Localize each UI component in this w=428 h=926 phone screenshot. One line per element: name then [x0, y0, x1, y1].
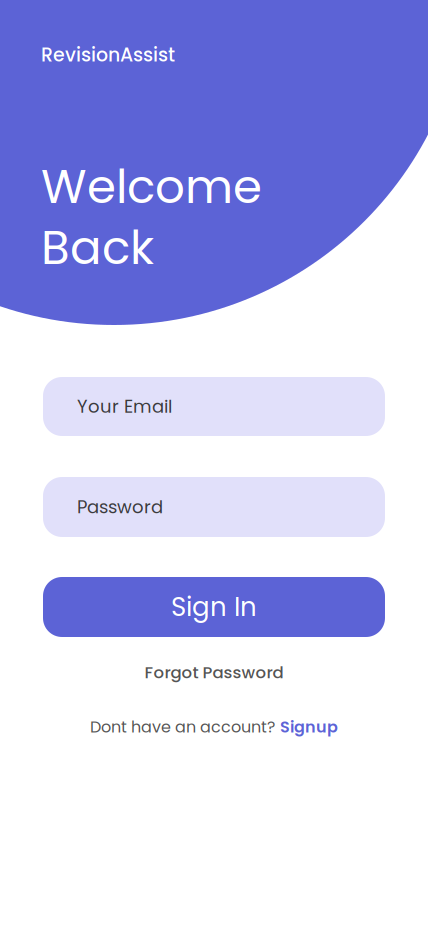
- staticText: Forgot Password: [144, 661, 283, 684]
- staticText: Sign In: [171, 589, 257, 625]
- staticText: Your Email: [77, 394, 172, 419]
- staticText: Dont have an account?: [90, 716, 275, 738]
- staticText: Back: [41, 215, 154, 280]
- staticText: Password: [77, 494, 163, 520]
- button[interactable]: Signup: [280, 716, 338, 738]
- button[interactable]: Sign In: [43, 577, 385, 637]
- staticText: RevisionAssist: [41, 41, 175, 68]
- button[interactable]: Forgot Password: [144, 659, 283, 686]
- staticText: Welcome: [41, 154, 262, 219]
- staticText: Signup: [280, 716, 338, 738]
